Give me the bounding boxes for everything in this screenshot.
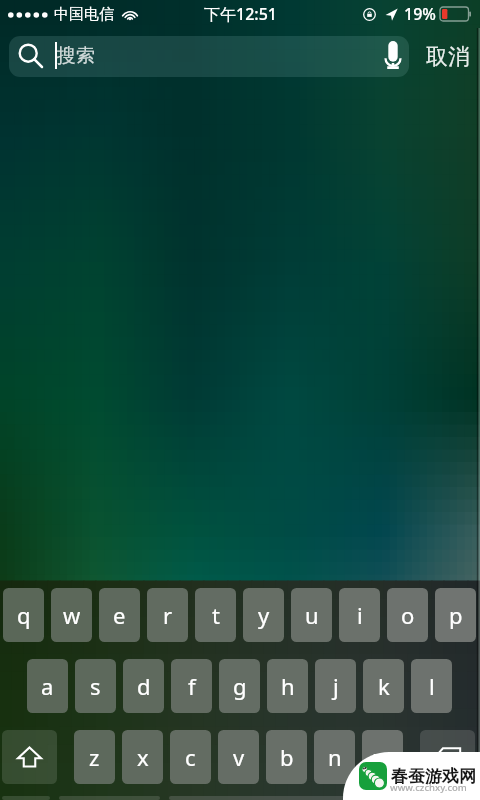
staticText: t <box>212 600 220 630</box>
staticText: 搜索 <box>57 44 95 68</box>
button[interactable]: 取消 <box>413 36 480 77</box>
other: Location <box>385 8 398 21</box>
staticText: r <box>163 600 173 630</box>
staticText: www.czchxy.com <box>390 781 467 794</box>
staticText: h <box>281 671 295 701</box>
staticText: x <box>137 742 149 772</box>
button[interactable]: d <box>123 659 164 713</box>
button[interactable]: Space <box>169 796 478 800</box>
staticText: q <box>17 600 31 630</box>
button[interactable]: Shift <box>2 730 57 784</box>
staticText: b <box>280 742 294 772</box>
other: Voice search <box>385 41 401 69</box>
button[interactable]: n <box>314 730 355 784</box>
staticText: m <box>372 742 393 772</box>
button[interactable]: z <box>74 730 115 784</box>
button[interactable]: e <box>99 588 140 642</box>
staticText: 19% <box>404 3 436 25</box>
staticText: n <box>328 742 342 772</box>
button[interactable]: h <box>267 659 308 713</box>
staticText: j <box>333 671 339 701</box>
button[interactable]: b <box>266 730 307 784</box>
staticText: k <box>378 671 390 701</box>
button[interactable]: s <box>75 659 116 713</box>
button[interactable]: q <box>3 588 44 642</box>
button[interactable]: u <box>291 588 332 642</box>
staticText: e <box>113 600 126 630</box>
staticText: p <box>449 600 463 630</box>
staticText: o <box>401 600 415 630</box>
button[interactable]: Numbers <box>2 796 50 800</box>
staticText: 春蚕游戏网 <box>391 766 476 787</box>
button[interactable]: m <box>362 730 403 784</box>
other: Rotation lock <box>363 8 376 21</box>
staticText: a <box>41 671 54 701</box>
button[interactable]: Backspace <box>420 730 475 784</box>
staticText: y <box>258 600 270 630</box>
staticText: g <box>233 671 247 701</box>
button[interactable]: 搜索 <box>9 36 409 77</box>
staticText: v <box>233 742 245 772</box>
button[interactable]: w <box>51 588 92 642</box>
staticText: d <box>137 671 151 701</box>
staticText: 取消 <box>426 43 470 71</box>
staticText: c <box>185 742 196 772</box>
staticText: u <box>305 600 319 630</box>
button[interactable]: o <box>387 588 428 642</box>
button[interactable]: i <box>339 588 380 642</box>
staticText: 下午12:51 <box>204 3 277 25</box>
button[interactable]: g <box>219 659 260 713</box>
staticText: i <box>357 600 363 630</box>
staticText: 中国电信 <box>54 5 114 24</box>
button[interactable]: a <box>27 659 68 713</box>
button[interactable]: v <box>218 730 259 784</box>
staticText: f <box>188 671 196 701</box>
button[interactable]: x <box>122 730 163 784</box>
button[interactable]: r <box>147 588 188 642</box>
button[interactable]: j <box>315 659 356 713</box>
button[interactable]: Switch keyboard <box>59 796 160 800</box>
button[interactable]: p <box>435 588 476 642</box>
button[interactable]: k <box>363 659 404 713</box>
staticText: s <box>90 671 101 701</box>
staticText: w <box>63 600 81 630</box>
button[interactable]: l <box>411 659 452 713</box>
button[interactable]: f <box>171 659 212 713</box>
staticText: z <box>89 742 100 772</box>
button[interactable]: t <box>195 588 236 642</box>
button[interactable]: c <box>170 730 211 784</box>
staticText: l <box>429 671 435 701</box>
button[interactable]: y <box>243 588 284 642</box>
